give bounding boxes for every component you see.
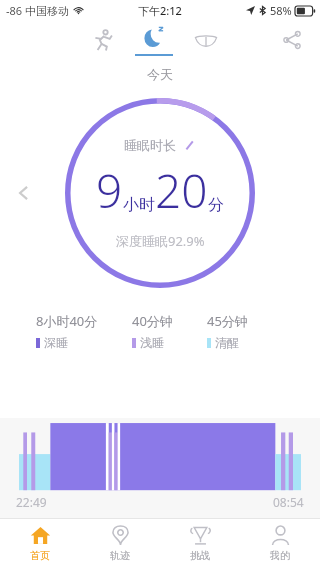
- staticText: 下午2:12: [138, 3, 182, 18]
- button[interactable]: 我的: [240, 519, 320, 568]
- staticText: 20: [155, 159, 208, 222]
- staticText: 浅睡: [140, 335, 164, 350]
- button[interactable]: Sleep: [132, 20, 176, 60]
- staticText: 我的: [270, 549, 290, 562]
- staticText: 45分钟: [207, 312, 248, 330]
- staticText: 挑战: [190, 549, 210, 562]
- staticText: 40分钟: [132, 312, 173, 330]
- staticText: 轨迹: [110, 549, 130, 562]
- button[interactable]: 首页: [0, 519, 80, 568]
- staticText: 首页: [30, 549, 50, 562]
- button[interactable]: 8小时40分: [36, 312, 98, 350]
- staticText: 今天: [0, 66, 320, 82]
- staticText: 小时: [123, 195, 155, 215]
- staticText: -86 中国移动: [6, 3, 69, 18]
- button[interactable]: 挑战: [160, 519, 240, 568]
- staticText: 58%: [270, 3, 292, 18]
- staticText: 深睡: [44, 335, 68, 350]
- button[interactable]: 40分钟: [132, 312, 173, 350]
- button[interactable]: 轨迹: [80, 519, 160, 568]
- staticText: 8小时40分: [36, 312, 98, 330]
- button[interactable]: Steps: [82, 20, 122, 60]
- button[interactable]: Share: [272, 20, 312, 60]
- button[interactable]: Previous day: [10, 179, 38, 207]
- staticText: 分: [208, 195, 224, 215]
- staticText: 08:54: [273, 494, 304, 510]
- button[interactable]: Edit: [182, 138, 196, 152]
- staticText: 睡眠时长: [124, 137, 176, 153]
- staticText: 深度睡眠92.9%: [116, 232, 205, 250]
- button[interactable]: 45分钟: [207, 312, 248, 350]
- staticText: 22:49: [16, 494, 47, 510]
- staticText: 清醒: [215, 335, 239, 350]
- staticText: 9: [96, 159, 123, 222]
- button[interactable]: Mask: [186, 20, 226, 60]
